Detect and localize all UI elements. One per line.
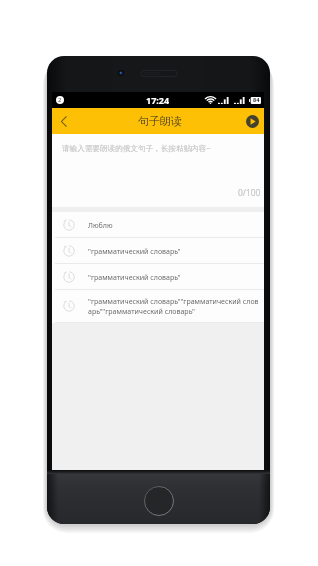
staticText: 17:24 <box>146 94 170 106</box>
staticText: 2 <box>58 96 62 104</box>
staticText: 请输入需要朗读的俄文句子，长按粘贴内容~ <box>62 143 211 153</box>
staticText: "грамматический словарь" <box>88 272 181 282</box>
button[interactable]: "грамматический словарь" <box>52 264 264 290</box>
staticText: "грамматический словарь" <box>88 246 181 256</box>
button[interactable]: Play <box>246 115 259 128</box>
staticText: Люблю <box>88 220 113 230</box>
staticText: 84 <box>253 96 260 104</box>
button[interactable]: Back <box>52 108 76 134</box>
staticText: 句子朗读 <box>138 114 182 128</box>
staticText: "грамматический словарь""грамматический … <box>88 296 258 316</box>
button[interactable]: "грамматический словарь" <box>52 238 264 264</box>
button[interactable]: "грамматический словарь""грамматический … <box>52 290 264 323</box>
staticText: 0/100 <box>238 187 261 198</box>
button[interactable]: Люблю <box>52 212 264 238</box>
